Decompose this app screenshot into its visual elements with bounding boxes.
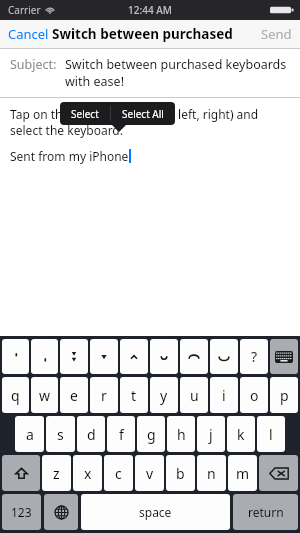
- button[interactable]: 123: [2, 494, 41, 530]
- staticText: e: [70, 386, 78, 405]
- button[interactable]: t: [120, 377, 148, 413]
- button[interactable]: symbol key: [120, 339, 148, 374]
- button[interactable]: b: [166, 455, 195, 491]
- button[interactable]: n: [197, 455, 226, 491]
- button[interactable]: return: [233, 494, 298, 530]
- button[interactable]: k: [227, 416, 255, 452]
- staticText: Select: [71, 107, 99, 121]
- staticText: c: [115, 464, 122, 483]
- staticText: Subject:: [10, 56, 57, 73]
- button[interactable]: symbol key: [180, 339, 208, 374]
- staticText: Switch between purchased keyb…: [52, 25, 248, 43]
- staticText: Tap on the globe key (bottom left, right…: [10, 106, 290, 138]
- button[interactable]: i: [210, 377, 238, 413]
- button[interactable]: v: [135, 455, 164, 491]
- staticText: return: [248, 504, 284, 520]
- staticText: f: [119, 425, 124, 444]
- staticText: i: [222, 386, 226, 405]
- staticText: r: [101, 386, 107, 405]
- staticText: g: [147, 425, 156, 444]
- button[interactable]: u: [180, 377, 208, 413]
- button[interactable]: Cancel: [0, 21, 57, 47]
- staticText: y: [160, 386, 168, 405]
- staticText: b: [176, 464, 185, 483]
- staticText: h: [177, 425, 186, 444]
- staticText: Send: [261, 25, 292, 43]
- button[interactable]: z: [42, 455, 71, 491]
- button[interactable]: y: [150, 377, 178, 413]
- button[interactable]: symbol key: [150, 339, 178, 374]
- staticText: s: [57, 425, 64, 444]
- staticText: q: [11, 386, 20, 405]
- staticText: d: [87, 425, 96, 444]
- button[interactable]: h: [167, 416, 195, 452]
- button[interactable]: Keyboard settings: [270, 339, 298, 374]
- staticText: z: [53, 464, 60, 483]
- button[interactable]: a: [15, 416, 44, 452]
- button[interactable]: symbol key: [90, 339, 118, 374]
- staticText: Select All: [122, 107, 164, 121]
- button[interactable]: symbol key: [2, 339, 29, 374]
- staticText: Sent from my iPhone: [10, 148, 129, 164]
- staticText: p: [280, 386, 289, 405]
- staticText: Cancel: [8, 25, 49, 43]
- button[interactable]: j: [197, 416, 225, 452]
- staticText: x: [84, 464, 92, 483]
- staticText: u: [190, 386, 199, 405]
- staticText: n: [207, 464, 216, 483]
- staticText: 123: [11, 504, 32, 520]
- button[interactable]: Select All: [111, 102, 175, 125]
- staticText: l: [269, 425, 273, 444]
- button[interactable]: Select: [60, 102, 110, 125]
- staticText: v: [146, 464, 154, 483]
- button[interactable]: s: [46, 416, 75, 452]
- button[interactable]: d: [77, 416, 105, 452]
- staticText: a: [26, 425, 34, 444]
- staticText: j: [209, 425, 213, 444]
- button[interactable]: p: [270, 377, 298, 413]
- button[interactable]: Send: [253, 21, 300, 47]
- staticText: t: [131, 386, 137, 405]
- staticText: w: [39, 386, 51, 405]
- button[interactable]: m: [228, 455, 257, 491]
- button[interactable]: x: [73, 455, 102, 491]
- staticText: m: [236, 464, 250, 483]
- button[interactable]: g: [137, 416, 165, 452]
- button[interactable]: e: [60, 377, 88, 413]
- button[interactable]: ?: [240, 339, 268, 374]
- button[interactable]: Backspace: [259, 455, 298, 491]
- button[interactable]: symbol key: [60, 339, 88, 374]
- button[interactable]: l: [257, 416, 285, 452]
- staticText: Switch between purchased keyboards with …: [65, 56, 290, 89]
- staticText: 12:44 AM: [128, 3, 172, 17]
- button[interactable]: Shift: [2, 455, 40, 491]
- button[interactable]: f: [107, 416, 135, 452]
- button[interactable]: Change keyboard: [44, 494, 78, 530]
- staticText: k: [237, 425, 245, 444]
- button[interactable]: q: [2, 377, 29, 413]
- button[interactable]: c: [104, 455, 133, 491]
- staticText: space: [139, 504, 172, 520]
- button[interactable]: o: [240, 377, 268, 413]
- staticText: o: [250, 386, 259, 405]
- staticText: Carrier: [8, 3, 41, 17]
- staticText: ?: [251, 347, 258, 366]
- button[interactable]: symbol key: [210, 339, 238, 374]
- button[interactable]: r: [90, 377, 118, 413]
- button[interactable]: symbol key: [31, 339, 58, 374]
- button[interactable]: w: [31, 377, 58, 413]
- button[interactable]: space: [81, 494, 230, 530]
